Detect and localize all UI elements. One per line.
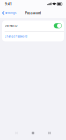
staticText: Password [25, 11, 41, 15]
button[interactable]: Settings [41, 129, 58, 137]
staticText: Use Face ID [5, 24, 18, 27]
button[interactable]: Change Password [2, 31, 64, 41]
staticText: Settings [5, 11, 16, 15]
button[interactable]: Use Face ID [2, 20, 64, 31]
staticText: Change Password [5, 35, 28, 38]
button[interactable]: Settings [0, 8, 19, 17]
staticText: 9:41 [5, 2, 12, 6]
button[interactable]: Security [25, 129, 41, 137]
